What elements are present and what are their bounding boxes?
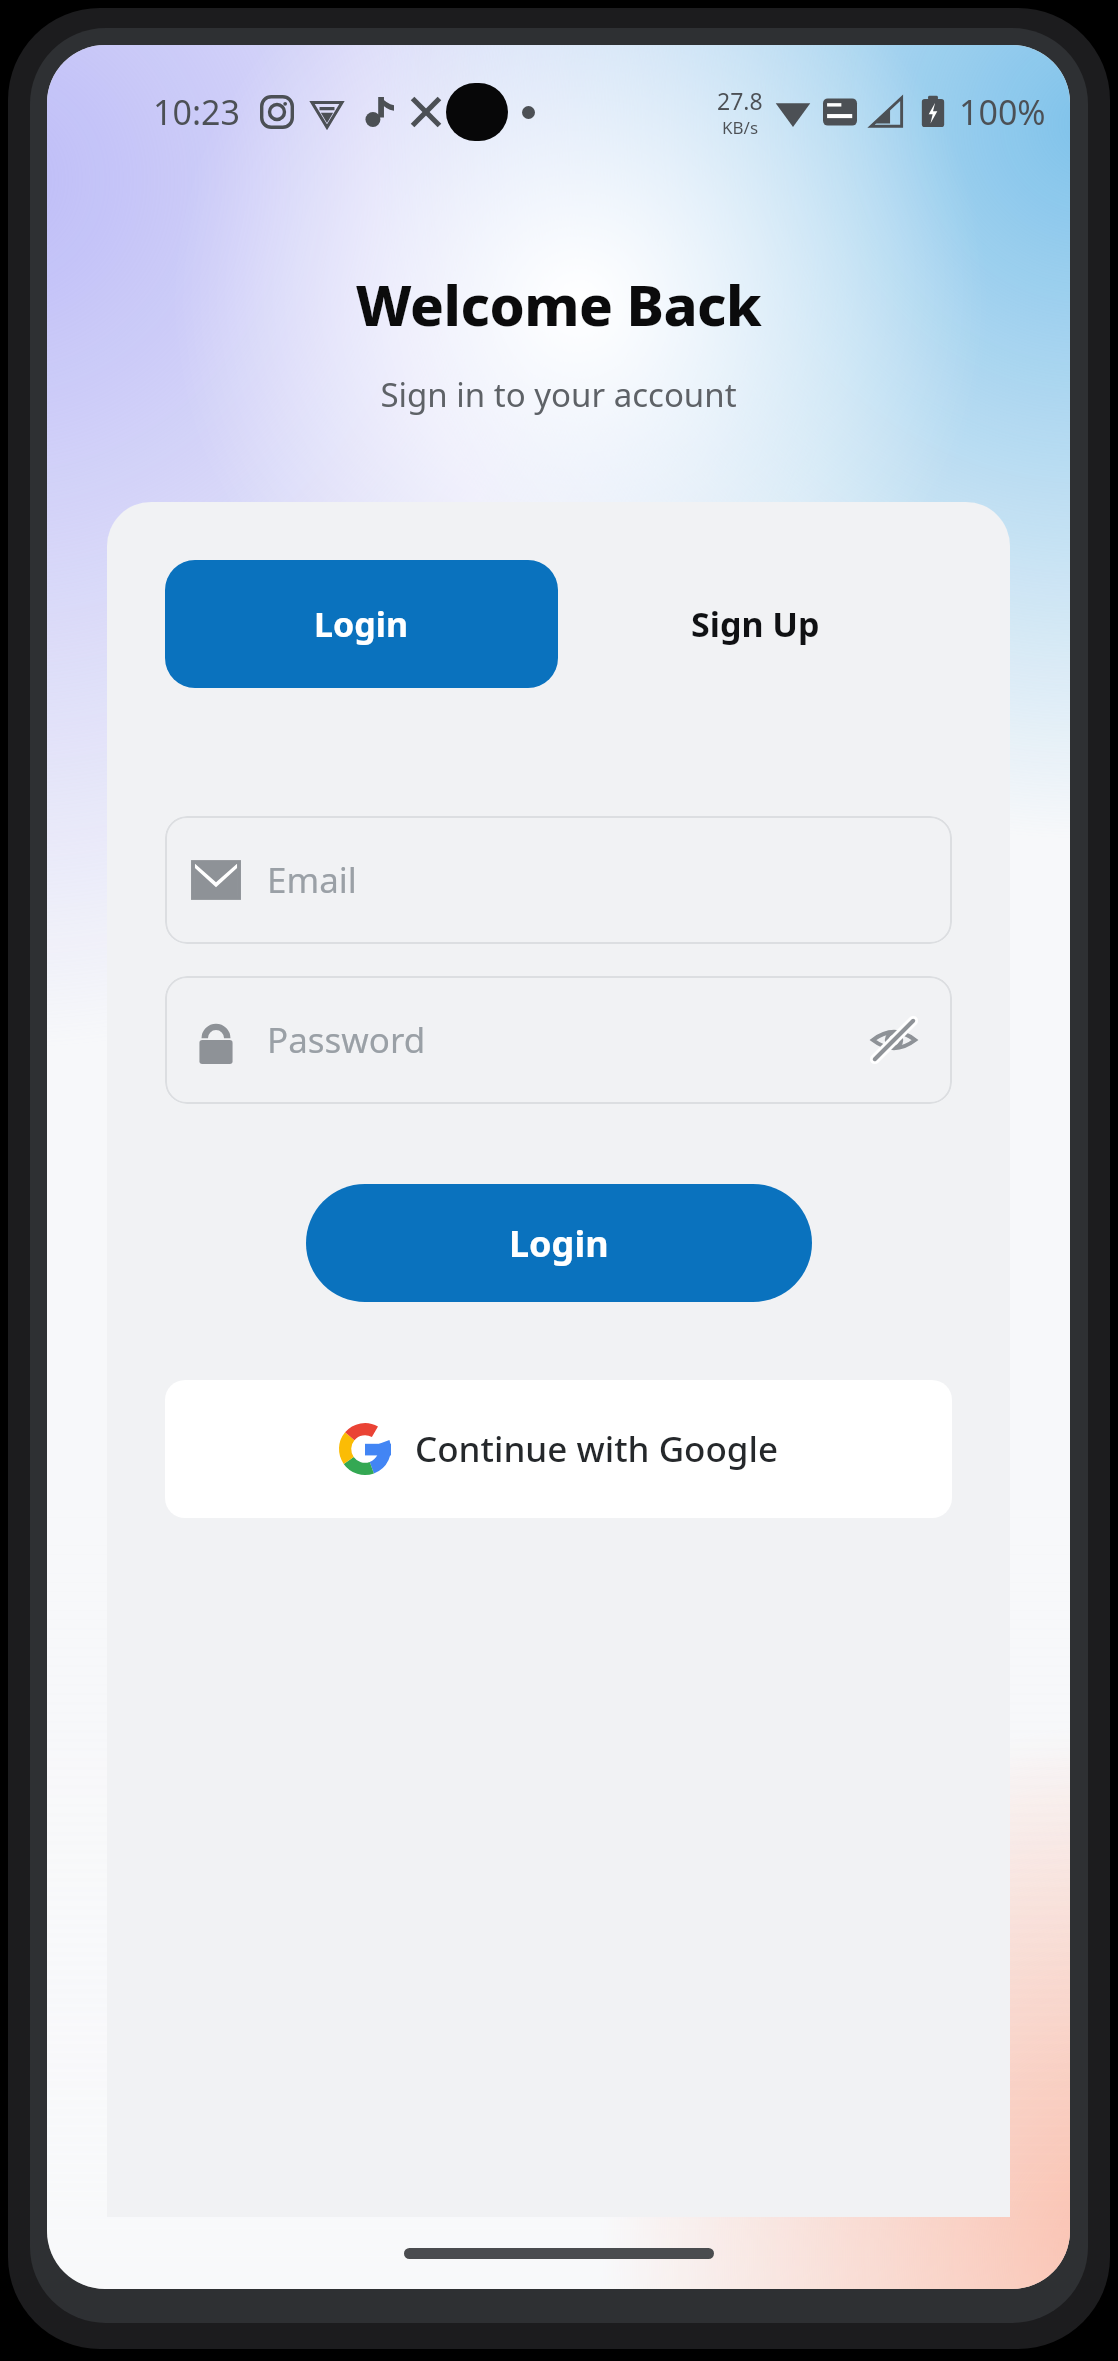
button[interactable]: Toggle password visibility [864, 1010, 924, 1070]
staticText: Sign Up [691, 601, 820, 647]
staticText: 100% [959, 89, 1046, 135]
button[interactable]: Sign Up [558, 560, 952, 688]
staticText: 27.8 [717, 85, 763, 116]
staticText: Welcome Back [47, 266, 1070, 342]
button[interactable]: Password [165, 976, 952, 1104]
button[interactable]: Email [165, 816, 952, 944]
staticText: Email [267, 856, 924, 904]
button[interactable]: Login [165, 560, 558, 688]
staticText: Password [267, 1016, 864, 1064]
staticText: Login [509, 1219, 609, 1268]
staticText: Continue with Google [415, 1425, 779, 1473]
button[interactable]: Continue with Google [165, 1380, 952, 1518]
staticText: KB/s [722, 116, 759, 139]
staticText: Sign in to your account [47, 372, 1070, 417]
staticText: 10:23 [153, 89, 240, 135]
staticText: Login [314, 601, 409, 647]
button[interactable]: Login [306, 1184, 812, 1302]
